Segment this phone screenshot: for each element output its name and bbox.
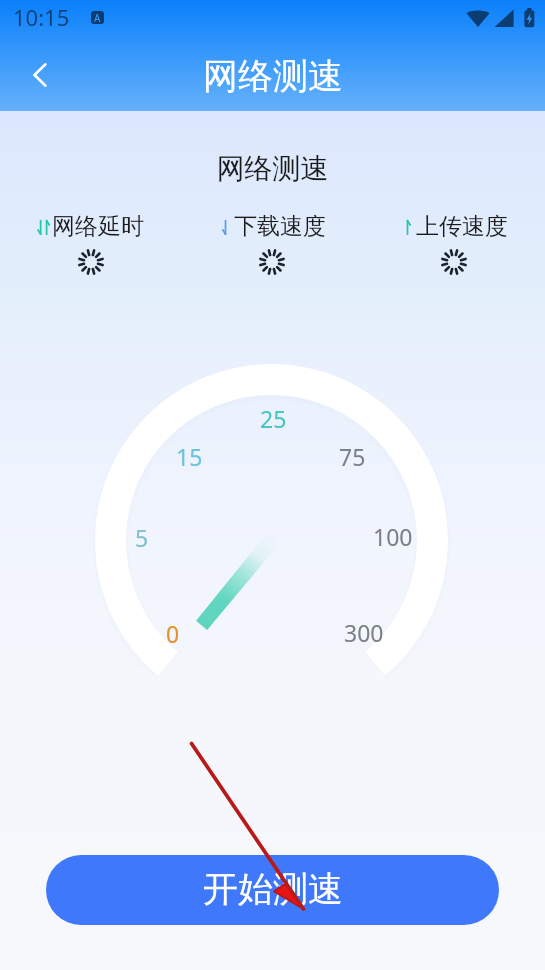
staticText: 300 xyxy=(344,617,384,648)
staticText: 0 xyxy=(166,618,180,649)
staticText: 25 xyxy=(260,403,287,434)
button[interactable]: 开始测速 xyxy=(46,855,499,925)
staticText: 开始测速 xyxy=(203,867,343,911)
staticText: 网络测速 xyxy=(203,54,343,98)
staticText: 10:15 xyxy=(13,2,70,32)
staticText: 100 xyxy=(373,521,413,552)
staticText: A xyxy=(94,11,101,24)
staticText: 网络测速 xyxy=(0,151,545,186)
button[interactable]: Back xyxy=(15,50,64,99)
staticText: 网络延时 xyxy=(52,212,144,241)
staticText: 15 xyxy=(176,441,203,472)
staticText: 75 xyxy=(339,441,366,472)
staticText: 5 xyxy=(135,522,149,553)
staticText: 下载速度 xyxy=(234,212,326,241)
staticText: 上传速度 xyxy=(416,212,508,241)
